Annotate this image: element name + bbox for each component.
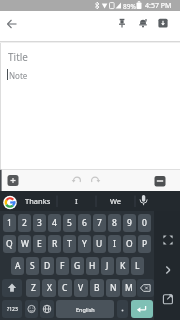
button[interactable]	[154, 14, 172, 32]
staticText: ?123	[7, 306, 18, 313]
button[interactable]: Q	[3, 235, 16, 253]
staticText: T	[67, 238, 72, 250]
staticText: We	[110, 196, 122, 206]
staticText: Title	[8, 50, 28, 64]
button[interactable]: M	[122, 279, 136, 297]
staticText: N	[110, 282, 117, 294]
button[interactable]: O	[123, 235, 136, 253]
staticText: Thanks	[25, 196, 51, 206]
button[interactable]: V	[74, 279, 88, 297]
staticText: B	[94, 282, 100, 294]
staticText: 6	[82, 217, 87, 229]
button[interactable]: 4	[48, 214, 61, 232]
button[interactable]: ?123	[2, 300, 22, 318]
button[interactable]: W	[18, 235, 31, 253]
button[interactable]	[3, 15, 21, 33]
button[interactable]: F	[56, 257, 69, 275]
button[interactable]	[2, 279, 22, 297]
button[interactable]: 1	[3, 214, 16, 232]
staticText: V	[78, 282, 84, 294]
button[interactable]: We	[96, 191, 135, 211]
button[interactable]: E	[33, 235, 46, 253]
button[interactable]: X	[42, 279, 56, 297]
button[interactable]	[159, 231, 177, 249]
staticText: 89%	[123, 2, 136, 11]
staticText: 3	[37, 217, 42, 229]
button[interactable]	[86, 171, 104, 189]
staticText: P	[142, 238, 148, 250]
button[interactable]: N	[106, 279, 120, 297]
button[interactable]	[159, 290, 177, 308]
staticText: Z	[31, 282, 36, 294]
button[interactable]: H	[86, 257, 99, 275]
staticText: 2	[22, 217, 27, 229]
button[interactable]: Z	[26, 279, 40, 297]
staticText: H	[89, 260, 96, 272]
staticText: K	[120, 260, 126, 272]
button[interactable]: K	[116, 257, 129, 275]
staticText: 8	[112, 217, 117, 229]
staticText: Y	[82, 238, 87, 250]
staticText: I	[113, 238, 116, 250]
button[interactable]: 9	[123, 214, 136, 232]
staticText: C	[62, 282, 68, 294]
button[interactable]: 7	[93, 214, 106, 232]
button[interactable]: 3	[33, 214, 46, 232]
button[interactable]	[25, 300, 38, 318]
staticText: 0	[142, 217, 147, 229]
button[interactable]: I	[57, 191, 96, 211]
button[interactable]: 0	[138, 214, 151, 232]
button[interactable]: 6	[78, 214, 91, 232]
staticText: W	[21, 238, 29, 250]
button[interactable]: Y	[78, 235, 91, 253]
button[interactable]	[151, 172, 169, 190]
staticText: 4:57 PM	[145, 1, 172, 11]
button[interactable]: P	[138, 235, 151, 253]
button[interactable]: J	[101, 257, 114, 275]
button[interactable]: U	[93, 235, 106, 253]
staticText: S	[30, 260, 35, 272]
staticText: F	[60, 260, 65, 272]
staticText: 7	[97, 217, 102, 229]
staticText: English	[76, 306, 95, 313]
button[interactable]: 2	[18, 214, 31, 232]
button[interactable]	[131, 300, 153, 318]
staticText: D	[44, 260, 51, 272]
button[interactable]: G	[71, 257, 84, 275]
staticText: L	[135, 260, 140, 272]
staticText: 4	[52, 217, 57, 229]
staticText: 9	[127, 217, 132, 229]
staticText: R	[52, 238, 58, 250]
staticText: O	[126, 238, 133, 250]
staticText: J	[106, 260, 109, 272]
button[interactable]: 5	[63, 214, 76, 232]
button[interactable]: 8	[108, 214, 121, 232]
button[interactable]: C	[58, 279, 72, 297]
button[interactable]	[68, 171, 86, 189]
button[interactable]	[113, 14, 131, 32]
button[interactable]	[4, 171, 22, 189]
button[interactable]	[134, 14, 152, 32]
button[interactable]: L	[131, 257, 144, 275]
button[interactable]: I	[108, 235, 121, 253]
button[interactable]: A	[11, 257, 24, 275]
button[interactable]	[40, 300, 54, 318]
staticText: E	[37, 238, 42, 250]
button[interactable]: S	[26, 257, 39, 275]
staticText: Q	[6, 238, 13, 250]
button[interactable]	[117, 300, 128, 318]
staticText: G	[74, 260, 81, 272]
button[interactable]: B	[90, 279, 104, 297]
button[interactable]: English	[56, 300, 114, 318]
staticText: 5	[67, 217, 72, 229]
staticText: M	[125, 282, 133, 294]
button[interactable]	[137, 279, 154, 297]
staticText: 1	[7, 217, 12, 229]
staticText: A	[15, 260, 21, 272]
button[interactable]: D	[41, 257, 54, 275]
button[interactable]: Thanks	[18, 191, 57, 211]
button[interactable]: T	[63, 235, 76, 253]
button[interactable]	[159, 261, 177, 279]
button[interactable]: R	[48, 235, 61, 253]
staticText: I	[75, 196, 78, 206]
